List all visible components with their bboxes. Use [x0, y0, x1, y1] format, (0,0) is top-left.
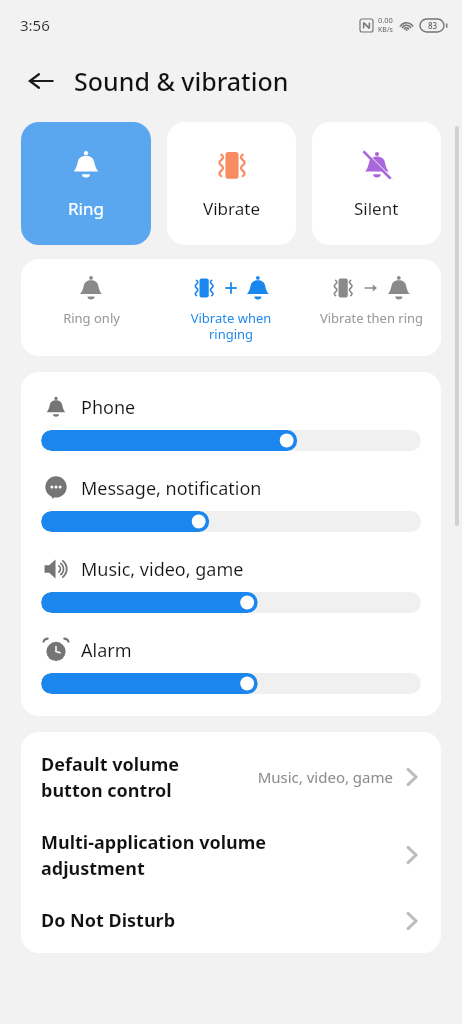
button[interactable]: Vibrate then ring — [301, 273, 441, 327]
button[interactable]: Multi-application volume adjustment — [41, 816, 421, 894]
button[interactable] — [41, 430, 421, 451]
staticText: Ring — [68, 197, 104, 220]
button[interactable]: Ring — [21, 122, 151, 245]
staticText: KB/s — [378, 25, 393, 35]
staticText: Ring only — [63, 309, 120, 327]
button[interactable]: Back — [24, 64, 58, 98]
staticText: Music, video, game — [257, 767, 393, 787]
button[interactable]: Vibrate when ringing — [161, 273, 301, 342]
staticText: Vibrate — [203, 197, 260, 220]
staticText: Sound & vibration — [74, 64, 289, 98]
button[interactable]: Vibrate — [167, 122, 296, 245]
button[interactable] — [41, 673, 421, 694]
staticText: Message, notification — [81, 476, 262, 501]
button[interactable] — [41, 592, 421, 613]
staticText: Vibrate then ring — [319, 309, 424, 327]
staticText: Music, video, game — [81, 557, 244, 582]
staticText: Do Not Disturb — [41, 908, 176, 933]
staticText: 83 — [428, 20, 438, 31]
staticText: Silent — [354, 197, 399, 220]
button[interactable]: Ring only — [21, 273, 161, 327]
staticText: Multi-application volume adjustment — [41, 830, 267, 880]
button[interactable]: Default volume button control — [41, 738, 421, 816]
staticText: Phone — [81, 395, 136, 420]
button[interactable]: Do Not Disturb — [41, 894, 421, 947]
staticText: 0.00 — [378, 15, 393, 25]
staticText: 3:56 — [20, 15, 50, 35]
button[interactable]: Silent — [312, 122, 441, 245]
staticText: Default volume button control — [41, 752, 180, 802]
staticText: Alarm — [81, 638, 132, 663]
button[interactable] — [41, 511, 421, 532]
staticText: Vibrate when ringing — [181, 309, 281, 342]
